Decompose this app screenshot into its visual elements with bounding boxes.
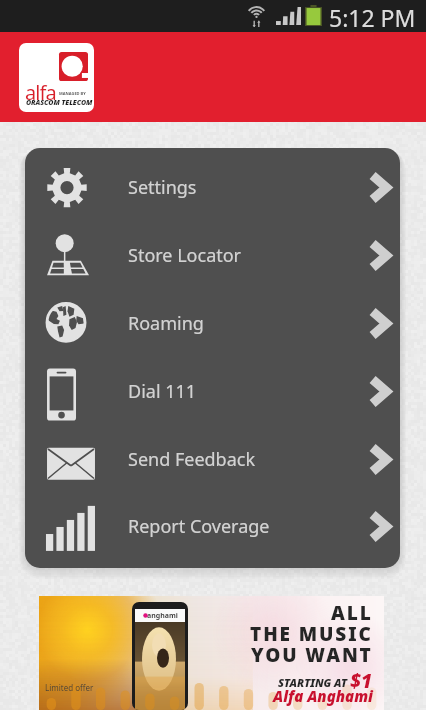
staticText: Dial 111: [128, 379, 197, 404]
staticText: Send Feedback: [128, 447, 256, 472]
staticText: $1: [350, 668, 373, 694]
button[interactable]: Alfa logo: [19, 43, 94, 112]
button[interactable]: Store Locator: [25, 221, 400, 289]
staticText: MANAGED BY: [59, 91, 86, 96]
staticText: anghami: [147, 611, 178, 621]
staticText: ALL: [331, 600, 373, 626]
staticText: Alfa Anghami: [273, 686, 373, 706]
button[interactable]: Dial 111: [25, 357, 400, 425]
button[interactable]: Settings: [25, 153, 400, 221]
staticText: THE MUSIC: [250, 621, 373, 647]
button[interactable]: Report Coverage: [25, 493, 400, 560]
button[interactable]: Roaming: [25, 289, 400, 357]
button[interactable]: Send Feedback: [25, 425, 400, 493]
staticText: Roaming: [128, 311, 204, 336]
staticText: alfa: [25, 79, 56, 106]
staticText: Settings: [128, 175, 197, 200]
staticText: YOU WANT: [251, 642, 373, 668]
staticText: 5:12 PM: [329, 2, 416, 33]
button[interactable]: Alfa Anghami advertisement: [39, 596, 384, 710]
staticText: Report Coverage: [128, 514, 270, 539]
staticText: STARTING AT: [278, 675, 350, 690]
staticText: Limited offer: [45, 682, 94, 693]
staticText: Store Locator: [128, 243, 242, 268]
staticText: ORASCOM TELECOM: [26, 98, 93, 108]
